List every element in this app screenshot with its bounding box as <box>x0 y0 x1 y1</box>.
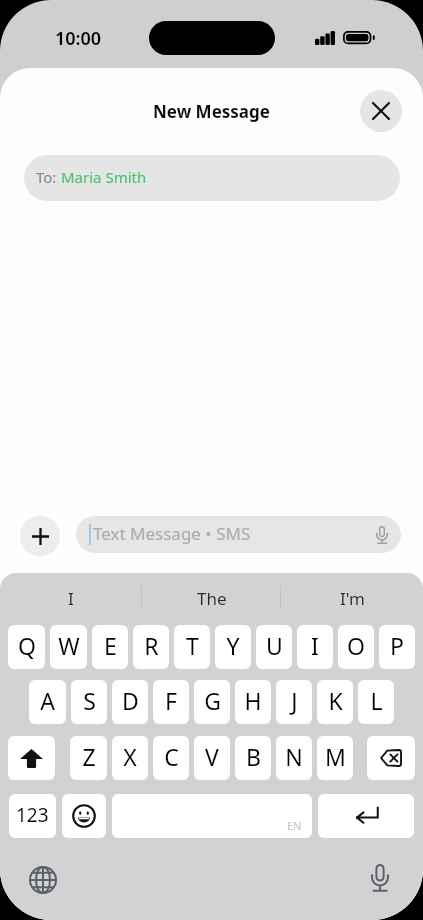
button[interactable]: 123 <box>9 794 56 838</box>
button[interactable]: Close <box>360 90 402 132</box>
button[interactable]: Y <box>215 625 251 669</box>
staticText: M <box>325 741 346 772</box>
staticText: B <box>246 741 261 772</box>
button[interactable]: Add attachment <box>20 516 60 556</box>
staticText: S <box>83 685 96 716</box>
button[interactable]: E <box>92 625 128 669</box>
button[interactable]: L <box>358 680 394 724</box>
staticText: D <box>122 685 139 716</box>
button[interactable]: I <box>0 573 141 625</box>
staticText: K <box>328 685 343 716</box>
button[interactable]: Q <box>8 625 45 669</box>
button[interactable]: I <box>297 625 333 669</box>
button[interactable]: B <box>235 736 271 780</box>
button[interactable]: H <box>235 680 271 724</box>
staticText: I <box>311 630 319 661</box>
button[interactable]: X <box>112 736 148 780</box>
button[interactable]: To: <box>24 155 400 201</box>
button[interactable]: J <box>276 680 312 724</box>
button[interactable]: W <box>50 625 87 669</box>
staticText: J <box>291 685 298 716</box>
button[interactable]: C <box>153 736 189 780</box>
button[interactable]: Backspace <box>367 736 415 780</box>
button[interactable]: N <box>276 736 312 780</box>
staticText: I <box>68 587 74 610</box>
button[interactable]: P <box>379 625 415 669</box>
staticText: N <box>285 741 303 772</box>
staticText: X <box>123 741 137 772</box>
staticText: C <box>164 741 179 772</box>
button[interactable]: The <box>141 573 282 625</box>
staticText: EN <box>287 818 302 833</box>
button[interactable]: Z <box>70 736 107 780</box>
staticText: Z <box>82 741 96 772</box>
button[interactable]: D <box>112 680 148 724</box>
staticText: W <box>58 630 80 661</box>
staticText: To: <box>36 167 61 187</box>
button[interactable]: V <box>194 736 230 780</box>
staticText: E <box>104 630 117 661</box>
button[interactable]: U <box>256 625 292 669</box>
button[interactable]: Shift <box>8 736 55 780</box>
button[interactable]: Dictate <box>370 520 394 550</box>
button[interactable]: K <box>317 680 353 724</box>
button[interactable]: R <box>133 625 169 669</box>
staticText: Maria Smith <box>61 167 147 187</box>
staticText: 123 <box>16 802 49 828</box>
button[interactable]: F <box>153 680 189 724</box>
staticText: The <box>197 587 227 610</box>
button[interactable]: Emoji <box>62 794 106 838</box>
button[interactable]: T <box>174 625 210 669</box>
staticText: New Message <box>153 100 270 123</box>
button[interactable]: A <box>29 680 66 724</box>
staticText: Y <box>226 630 240 661</box>
staticText: 10:00 <box>55 26 102 51</box>
button[interactable]: S <box>71 680 107 724</box>
button[interactable]: G <box>194 680 230 724</box>
staticText: Text Message • SMS <box>93 522 251 545</box>
staticText: T <box>186 630 199 661</box>
button[interactable]: I'm <box>282 573 423 625</box>
button[interactable]: O <box>338 625 374 669</box>
button[interactable]: Text Message • SMS <box>76 516 401 553</box>
staticText: V <box>205 741 219 772</box>
staticText: O <box>347 630 365 661</box>
staticText: Q <box>18 630 36 661</box>
staticText: I'm <box>340 587 365 610</box>
button[interactable]: Voice input <box>364 858 396 898</box>
button[interactable]: EN <box>112 794 312 838</box>
staticText: H <box>244 685 262 716</box>
staticText: F <box>165 685 177 716</box>
staticText: U <box>266 630 283 661</box>
staticText: L <box>370 685 383 716</box>
button[interactable]: M <box>317 736 353 780</box>
staticText: P <box>390 630 404 661</box>
button[interactable]: Change language <box>27 864 59 896</box>
staticText: A <box>40 685 55 716</box>
staticText: G <box>204 685 221 716</box>
staticText: R <box>144 630 159 661</box>
button[interactable]: Return <box>318 794 414 838</box>
